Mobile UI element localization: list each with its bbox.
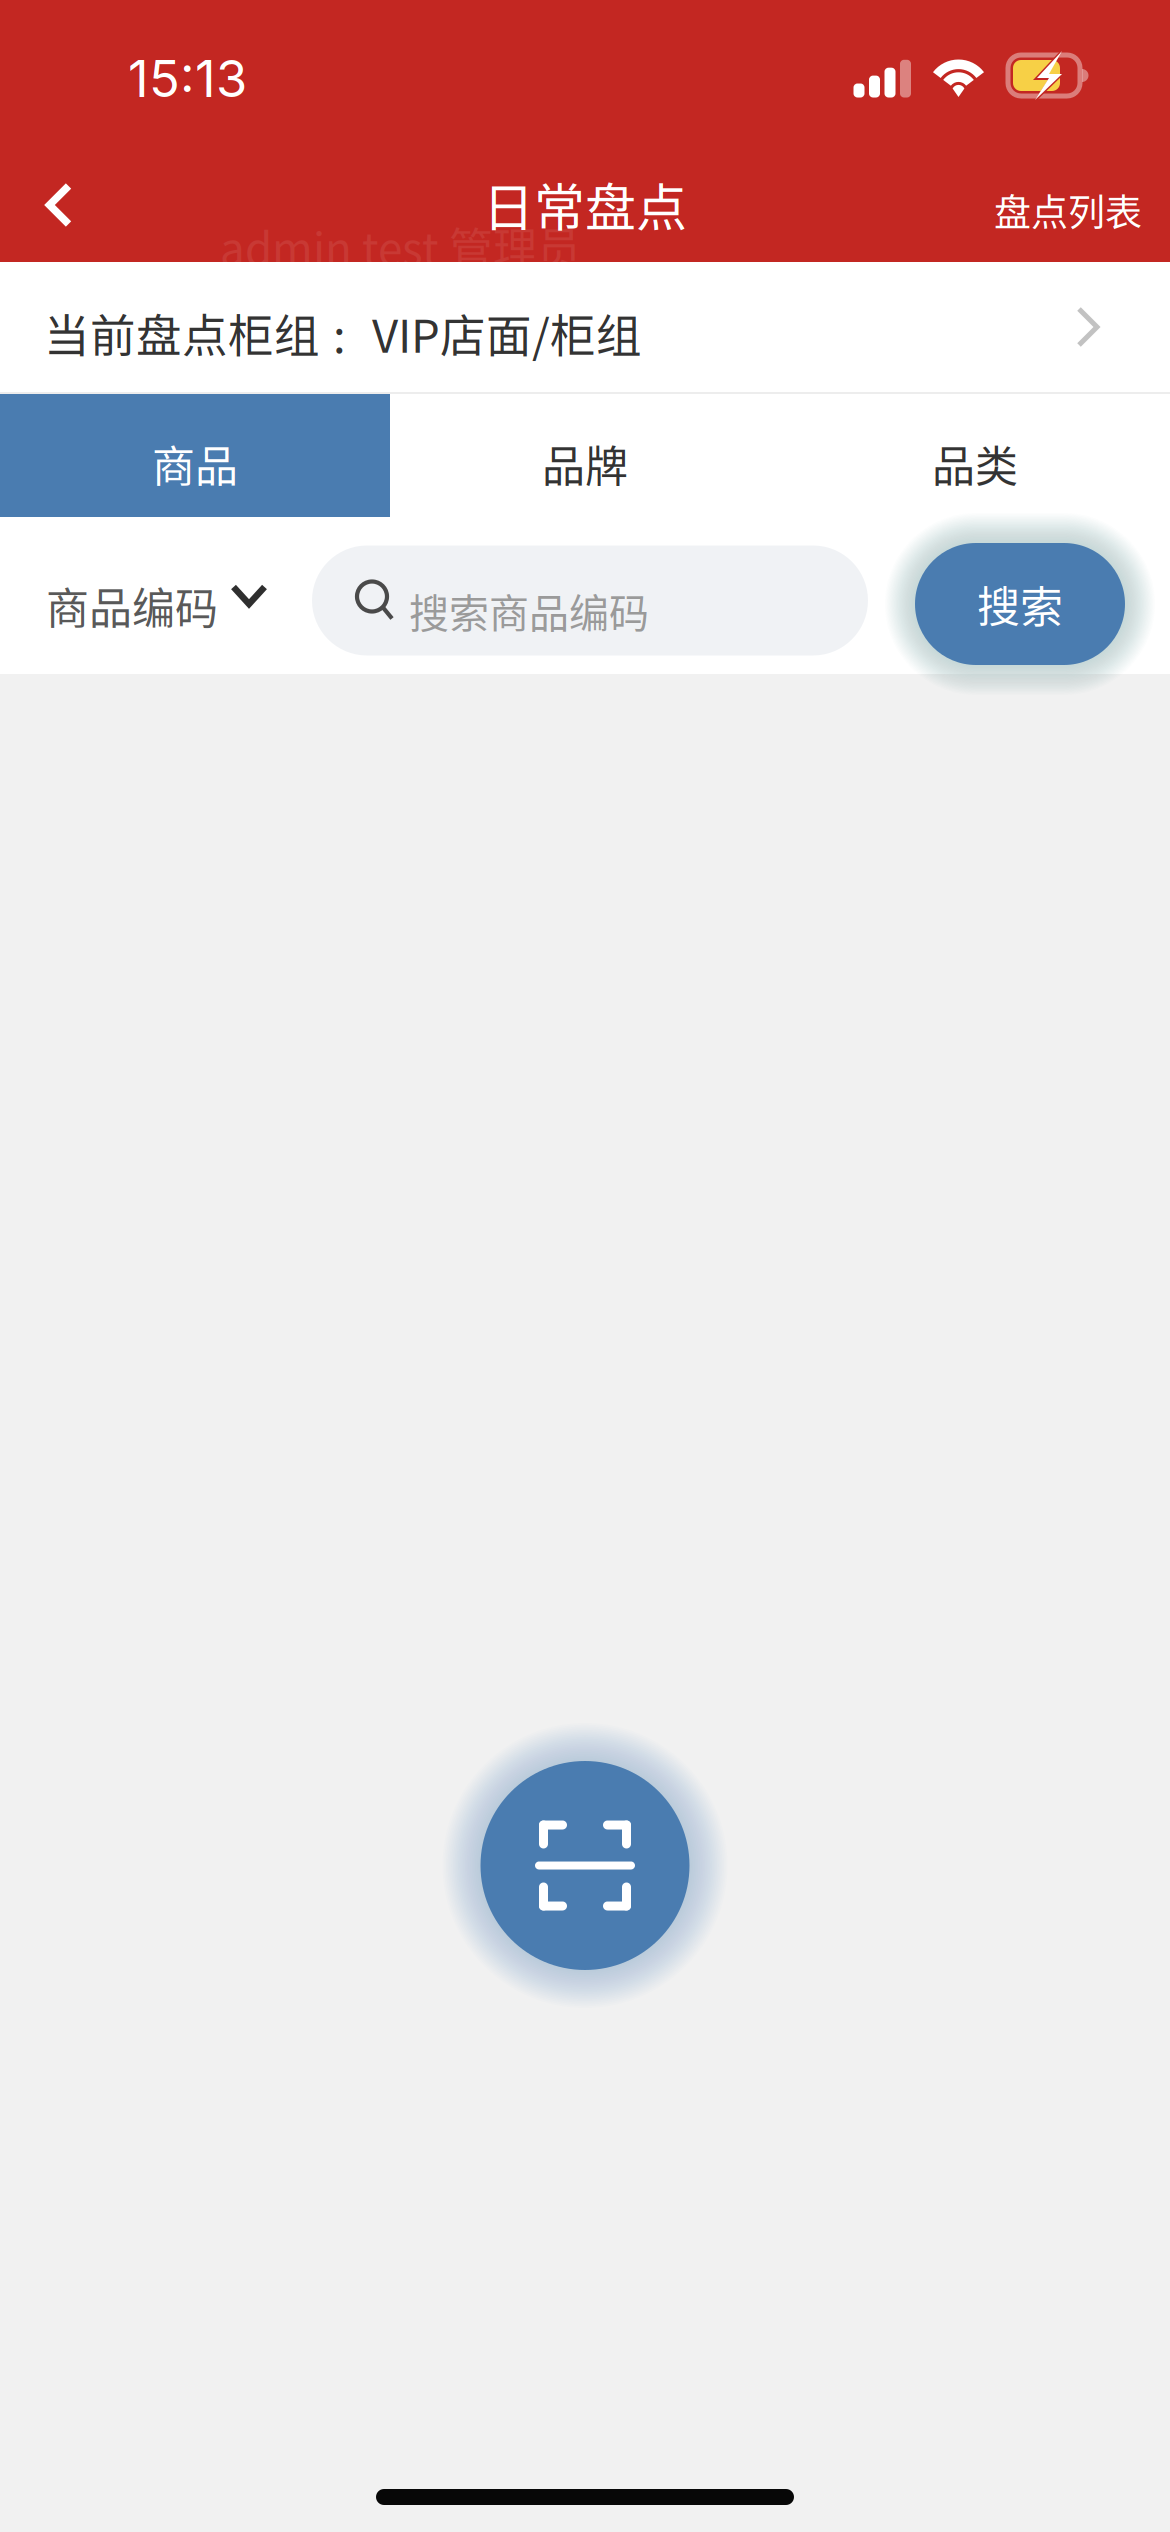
staticText: 搜索商品编码 <box>409 581 649 639</box>
staticText: 当前盘点柜组 <box>44 300 320 366</box>
staticText: 商品编码 <box>46 574 218 637</box>
button[interactable]: Back <box>0 130 98 262</box>
staticText: admin test 管理员 <box>220 214 581 278</box>
staticText: 盘点列表 <box>994 183 1142 237</box>
staticText: 品类 <box>932 432 1018 495</box>
button[interactable]: 商品 <box>0 394 390 517</box>
button[interactable]: 搜索 <box>915 526 1125 665</box>
staticText: 商品 <box>152 432 238 495</box>
button[interactable]: 商品编码 <box>0 517 268 674</box>
button[interactable]: 当前盘点柜组 <box>0 262 1170 392</box>
staticText: 日常盘点 <box>483 167 687 241</box>
staticText: VIP店面/柜组 <box>372 300 642 366</box>
staticText: 搜索 <box>977 573 1063 635</box>
button[interactable]: 品牌 <box>390 394 780 517</box>
staticText: 品牌 <box>542 432 628 495</box>
staticText: : <box>333 300 346 366</box>
staticText: 15:13 <box>128 48 247 109</box>
button[interactable]: Scan barcode <box>480 1761 689 1970</box>
button[interactable]: 盘点列表 <box>994 130 1170 262</box>
button[interactable]: 品类 <box>780 394 1170 517</box>
